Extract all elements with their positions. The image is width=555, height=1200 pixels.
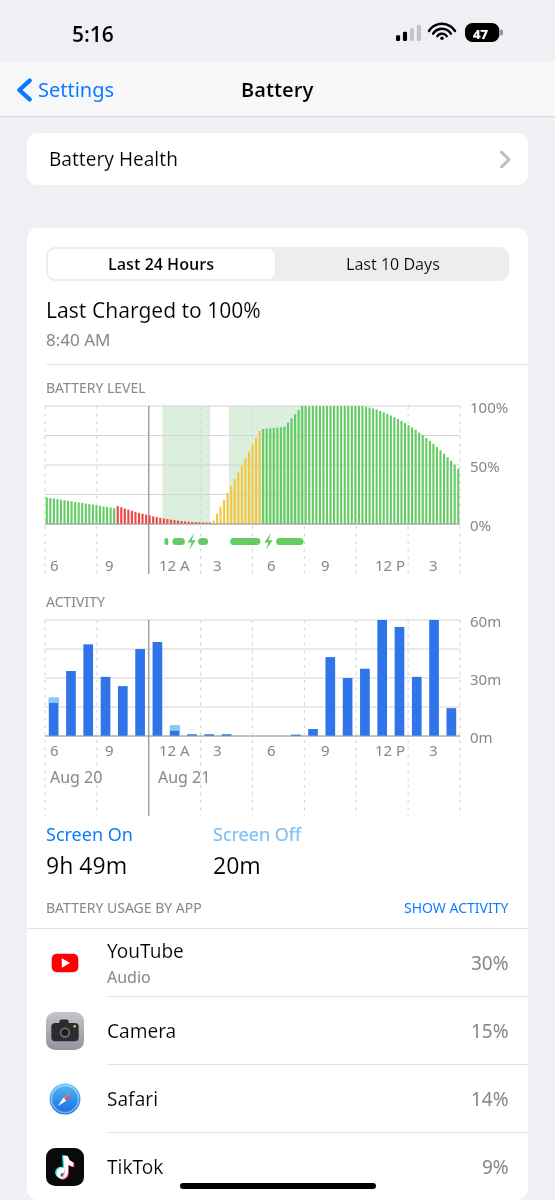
staticText: Aug 21	[158, 766, 211, 788]
staticText: TikTok	[107, 1154, 164, 1180]
staticText: 15%	[471, 1018, 509, 1044]
staticText: 12 P	[375, 740, 406, 760]
staticText: 60m	[470, 611, 502, 631]
staticText: Safari	[107, 1086, 159, 1112]
button[interactable]: Battery Health	[27, 133, 528, 185]
staticText: 100%	[470, 397, 509, 417]
staticText: Audio	[107, 966, 151, 988]
staticText: 9	[321, 555, 330, 575]
button[interactable]: TikTok	[27, 1133, 528, 1200]
staticText: Battery Health	[49, 146, 178, 172]
staticText: 6	[267, 740, 276, 760]
button[interactable]: Camera	[27, 997, 528, 1065]
staticText: 9	[105, 555, 114, 575]
staticText: 3	[213, 740, 222, 760]
staticText: Last Charged to 100%	[46, 296, 261, 325]
button[interactable]: SHOW ACTIVITY	[404, 898, 509, 917]
staticText: 0%	[470, 515, 492, 535]
staticText: 9	[321, 740, 330, 760]
staticText: 6	[50, 740, 59, 760]
staticText: Screen Off	[213, 822, 302, 847]
staticText: 9%	[482, 1154, 509, 1180]
staticText: 0m	[470, 727, 493, 747]
staticText: 30%	[471, 950, 509, 976]
button[interactable]: Settings	[12, 70, 121, 109]
staticText: Last 10 Days	[346, 253, 440, 275]
staticText: 14%	[471, 1086, 509, 1112]
staticText: 9h 49m	[46, 849, 128, 880]
button[interactable]: Last 10 Days	[277, 247, 509, 281]
staticText: 6	[267, 555, 276, 575]
staticText: Screen On	[46, 822, 133, 847]
staticText: 50%	[470, 456, 500, 476]
staticText: SHOW ACTIVITY	[404, 898, 509, 917]
staticText: 8:40 AM	[46, 328, 111, 351]
staticText: 47	[473, 25, 488, 43]
staticText: 12 P	[375, 555, 406, 575]
staticText: 6	[50, 555, 59, 575]
button[interactable]: Last 24 Hours	[48, 249, 275, 279]
staticText: 5:16	[72, 20, 114, 49]
staticText: Settings	[38, 76, 115, 103]
staticText: 12 A	[159, 555, 190, 575]
staticText: 9	[105, 740, 114, 760]
staticText: Last 24 Hours	[108, 253, 215, 275]
staticText: Camera	[107, 1018, 177, 1044]
staticText: ACTIVITY	[46, 592, 105, 611]
staticText: 30m	[470, 669, 502, 689]
staticText: BATTERY USAGE BY APP	[46, 898, 202, 917]
staticText: BATTERY LEVEL	[46, 378, 146, 397]
button[interactable]: YouTube	[27, 929, 528, 997]
staticText: 12 A	[159, 740, 190, 760]
staticText: 3	[213, 555, 222, 575]
staticText: Aug 20	[50, 766, 103, 788]
other: Open Battery Health	[500, 151, 510, 168]
staticText: 3	[429, 555, 438, 575]
staticText: 20m	[213, 849, 261, 880]
button[interactable]: Safari	[27, 1065, 528, 1133]
staticText: 3	[429, 740, 438, 760]
staticText: YouTube	[107, 938, 184, 964]
staticText: Battery	[241, 76, 314, 103]
